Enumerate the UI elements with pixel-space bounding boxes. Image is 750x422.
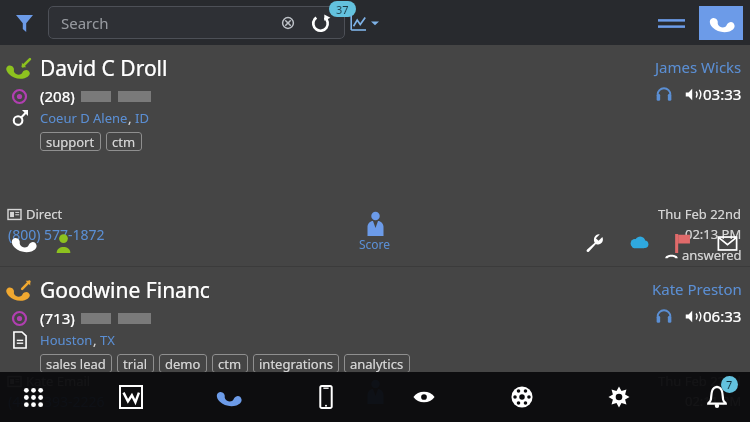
button[interactable]: Menu — [650, 2, 692, 44]
staticText: , — [128, 109, 135, 127]
button[interactable]: Live — [499, 374, 545, 420]
button[interactable]: ctm — [106, 132, 142, 151]
staticText: Direct — [26, 205, 63, 223]
button[interactable]: TX — [100, 331, 115, 349]
staticText: analytics — [350, 355, 404, 373]
staticText: 03:33 — [703, 84, 742, 104]
staticText: integrations — [259, 355, 333, 373]
button[interactable]: Play recording — [8, 228, 38, 258]
button[interactable]: Comment — [624, 228, 654, 258]
button[interactable]: Dial — [699, 6, 743, 40]
button[interactable]: ctm — [212, 354, 248, 373]
button[interactable]: Coeur D Alene — [40, 109, 128, 127]
staticText: trial — [123, 355, 148, 373]
staticText: Thu Feb 22nd — [658, 205, 742, 223]
button[interactable]: Contact — [48, 228, 78, 258]
staticText: Goodwine Financ — [40, 276, 210, 305]
button[interactable]: Tools — [580, 228, 610, 258]
button[interactable]: (800) 577-1872 — [8, 225, 105, 244]
staticText: 02:11 PM — [685, 392, 742, 410]
staticText: Thu Feb 22nd — [658, 372, 742, 390]
staticText: Kate Email — [26, 372, 91, 390]
button[interactable]: Calls — [205, 374, 251, 420]
staticText: Search — [61, 13, 109, 33]
staticText: 37 — [336, 2, 349, 17]
button[interactable]: support — [40, 132, 101, 151]
button[interactable]: ID — [135, 109, 149, 127]
staticText: ctm — [218, 355, 242, 373]
staticText: 06:33 — [703, 306, 742, 326]
staticText: (713) — [40, 308, 75, 328]
button[interactable]: Settings — [596, 374, 642, 420]
staticText: Score — [359, 236, 391, 252]
button[interactable]: James Wicks — [655, 57, 742, 77]
staticText: David C Droll — [40, 54, 168, 83]
button[interactable]: Filter — [9, 8, 39, 38]
staticText: sales lead — [46, 355, 106, 373]
button[interactable]: demo — [159, 354, 207, 373]
button[interactable]: analytics — [344, 354, 410, 373]
staticText: 7 — [726, 377, 733, 392]
button[interactable]: integrations — [253, 354, 339, 373]
button[interactable]: Houston — [40, 331, 93, 349]
staticText: demo — [165, 355, 201, 373]
staticText: support — [46, 133, 95, 151]
button[interactable]: Dialpad — [10, 374, 56, 420]
button[interactable]: Clear — [277, 12, 299, 34]
button[interactable]: Flag — [668, 228, 698, 258]
staticText: 02:13 PM — [685, 225, 742, 243]
button[interactable]: Device — [303, 374, 349, 420]
staticText: answered — [682, 246, 742, 264]
button[interactable]: (443) 393-2226 — [8, 392, 105, 411]
button[interactable]: Email — [712, 228, 742, 258]
button[interactable]: trial — [117, 354, 154, 373]
button[interactable]: sales lead — [40, 354, 112, 373]
button[interactable]: Refresh — [307, 10, 333, 36]
button[interactable]: Watch — [401, 374, 447, 420]
staticText: (208) — [40, 86, 75, 106]
staticText: , — [93, 331, 100, 349]
button[interactable]: Notifications — [694, 374, 740, 420]
button[interactable]: Kate Preston — [652, 279, 742, 299]
button[interactable]: Reports — [108, 374, 154, 420]
button[interactable]: Score — [359, 211, 391, 252]
button[interactable]: Chart view — [348, 10, 381, 36]
button[interactable]: Search — [48, 6, 345, 39]
staticText: ctm — [112, 133, 136, 151]
